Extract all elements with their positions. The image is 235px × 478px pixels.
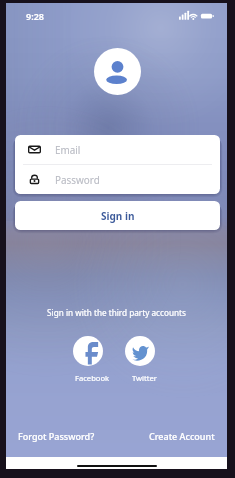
button[interactable]: Twitter bbox=[110, 336, 170, 383]
button[interactable]: Sign in bbox=[15, 201, 220, 230]
staticText: Email bbox=[55, 143, 81, 156]
button[interactable]: Forgot Password? bbox=[18, 430, 95, 442]
button[interactable]: Profile bbox=[94, 48, 141, 95]
staticText: Facebook bbox=[75, 373, 110, 383]
staticText: Sign in bbox=[101, 209, 135, 223]
button[interactable]: Facebook bbox=[58, 336, 118, 383]
button[interactable]: Create Account bbox=[149, 430, 215, 442]
staticText: Forgot Password? bbox=[18, 430, 95, 442]
button[interactable]: Password bbox=[15, 165, 220, 194]
staticText: 9:28 bbox=[26, 10, 44, 22]
staticText: Twitter bbox=[132, 373, 157, 383]
button[interactable]: Email bbox=[15, 135, 220, 164]
staticText: Password bbox=[55, 173, 100, 186]
staticText: Sign in with the third party accounts bbox=[6, 307, 227, 318]
staticText: Create Account bbox=[149, 430, 215, 442]
